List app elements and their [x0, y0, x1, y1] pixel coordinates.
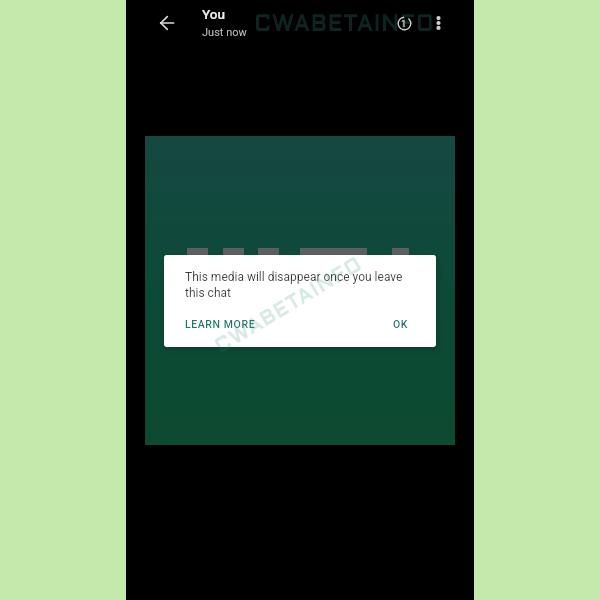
staticText: LEARN MORE: [185, 318, 256, 330]
staticText: 1: [401, 18, 407, 29]
button[interactable]: OK: [387, 312, 415, 336]
button[interactable]: View once: [386, 5, 422, 41]
staticText: CWABETAINFO: [254, 15, 435, 35]
button[interactable]: More options: [420, 5, 456, 41]
staticText: You: [202, 6, 225, 22]
staticText: OK: [393, 318, 409, 330]
staticText: Just now: [202, 26, 247, 39]
button[interactable]: Back: [149, 5, 185, 41]
staticText: This media will disappear once you leave…: [185, 270, 425, 300]
staticText: CWABETAINFO: [213, 255, 366, 358]
button[interactable]: LEARN MORE: [179, 312, 262, 336]
